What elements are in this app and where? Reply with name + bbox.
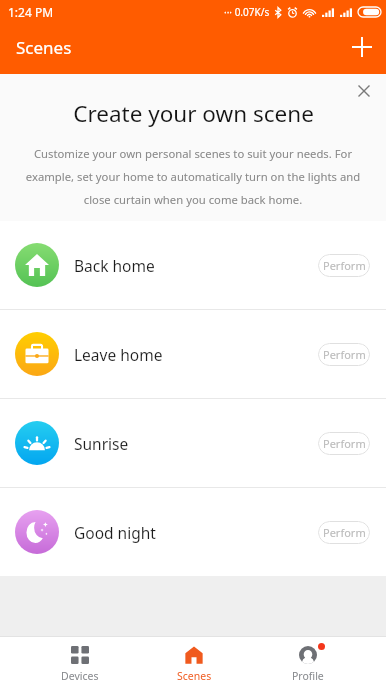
button[interactable]: Close xyxy=(346,74,382,110)
staticText: Perform xyxy=(323,258,366,273)
button[interactable]: Perform xyxy=(318,521,370,544)
staticText: Back home xyxy=(74,255,155,276)
button[interactable]: Scenes xyxy=(137,637,251,686)
staticText: Profile xyxy=(292,669,324,683)
button[interactable]: Leave home xyxy=(0,310,386,398)
staticText: 1:24 PM xyxy=(8,4,54,20)
button[interactable]: Perform xyxy=(318,254,370,277)
button[interactable]: Back home xyxy=(0,221,386,309)
staticText: Leave home xyxy=(74,344,163,365)
staticText: Sunrise xyxy=(74,433,129,454)
staticText: Create your own scene xyxy=(73,98,314,129)
staticText: ··· 0.07K/s xyxy=(224,5,270,19)
button[interactable]: Sunrise xyxy=(0,399,386,487)
button[interactable]: Perform xyxy=(318,432,370,455)
staticText: Perform xyxy=(323,525,366,540)
button[interactable]: Profile xyxy=(251,637,365,686)
button[interactable]: Good night xyxy=(0,488,386,576)
button[interactable]: Add scene xyxy=(338,25,386,73)
staticText: Perform xyxy=(323,347,366,362)
staticText: Devices xyxy=(61,669,99,683)
staticText: Customize your own personal scenes to su… xyxy=(18,146,368,207)
button[interactable]: Devices xyxy=(23,637,137,686)
staticText: Scenes xyxy=(16,36,72,59)
staticText: Perform xyxy=(323,436,366,451)
staticText: Scenes xyxy=(177,669,212,683)
button[interactable]: Perform xyxy=(318,343,370,366)
staticText: Good night xyxy=(74,522,156,543)
